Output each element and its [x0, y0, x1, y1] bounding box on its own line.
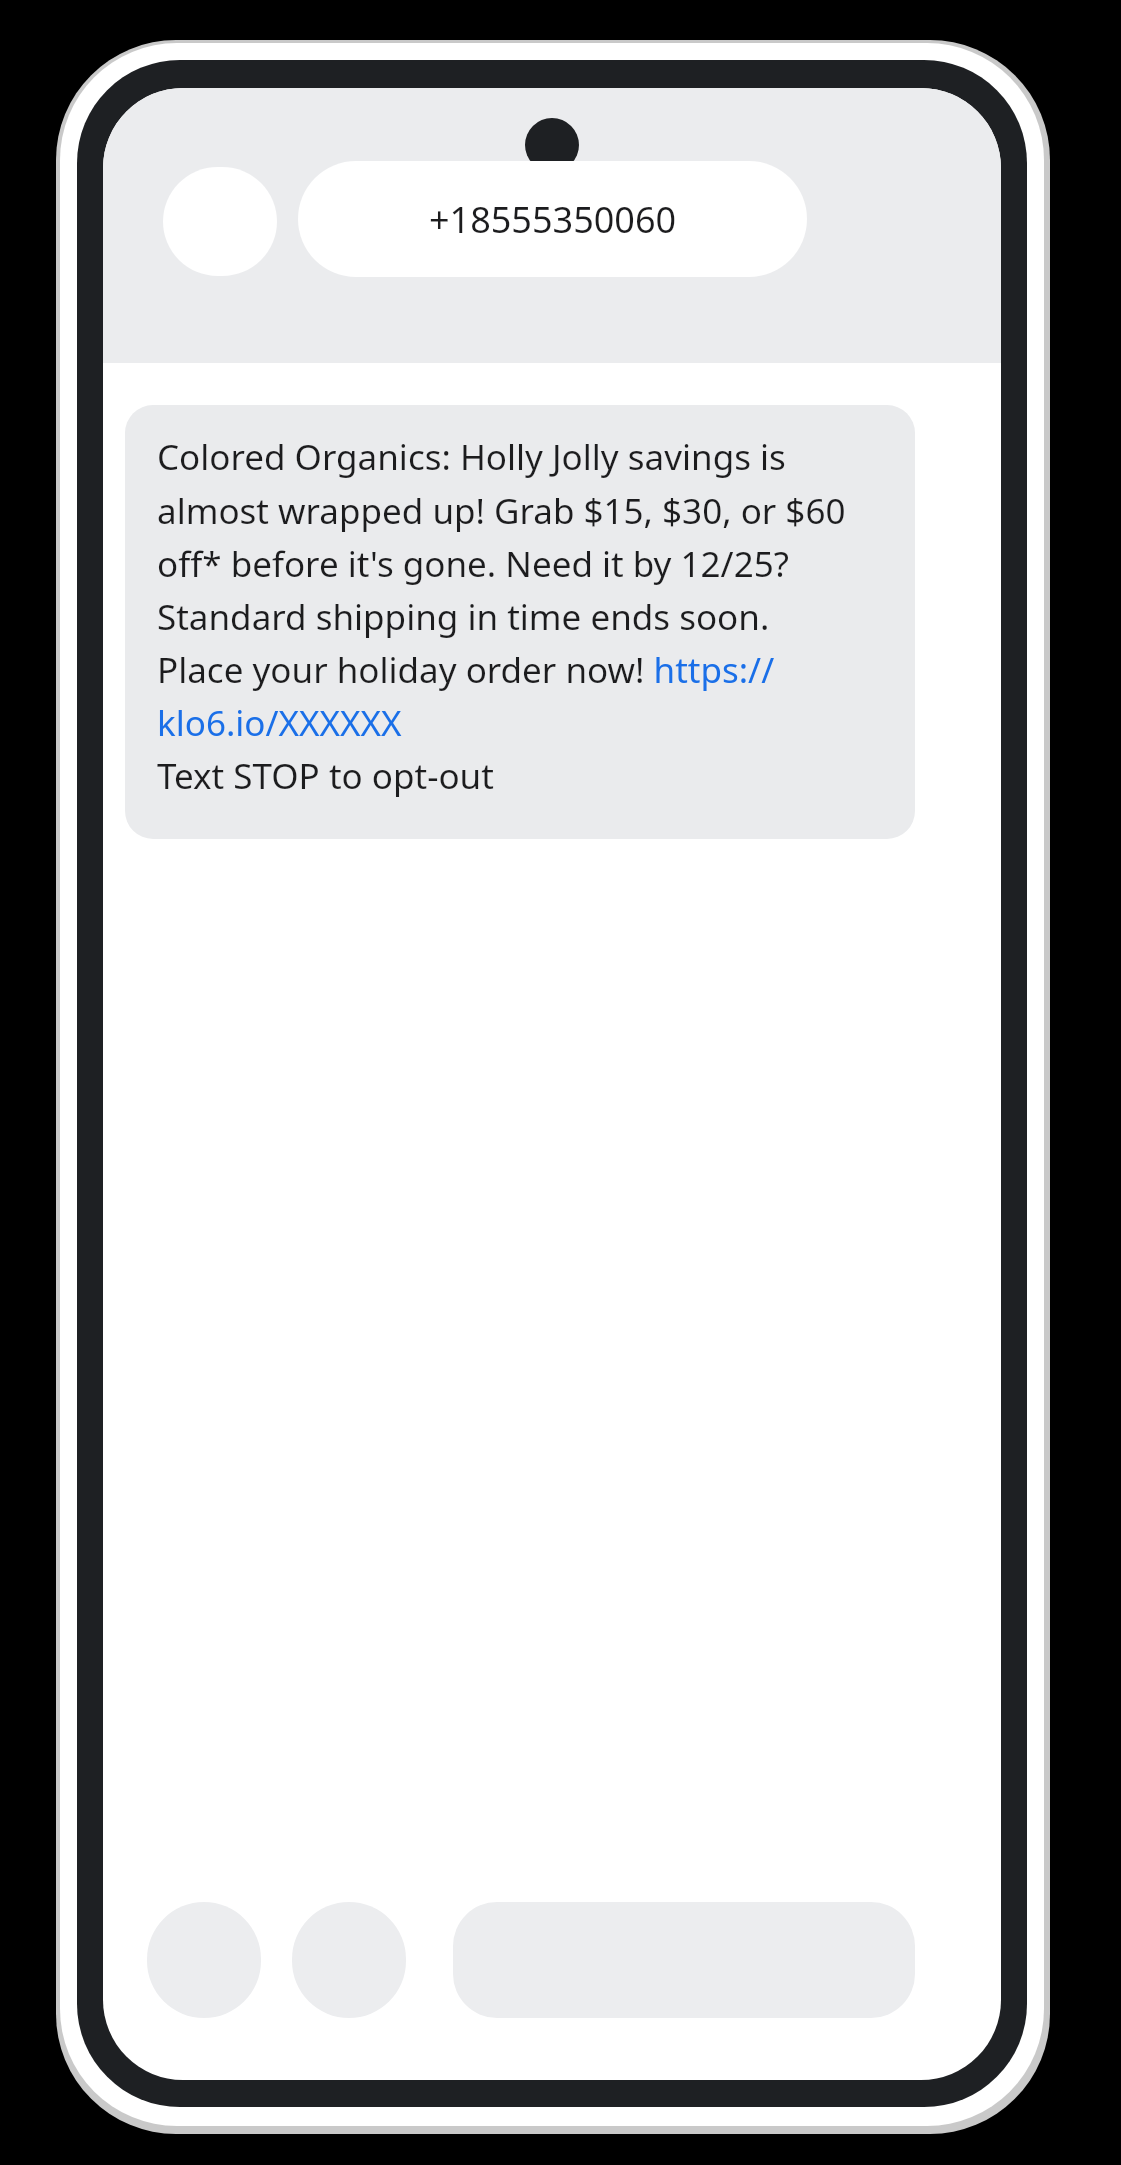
button[interactable]: +18555350060	[298, 161, 807, 277]
staticText: Colored Organics: Holly Jolly savings is…	[157, 433, 857, 799]
button[interactable]: Text message input	[453, 1902, 915, 2018]
button[interactable]: Camera	[292, 1902, 406, 2018]
staticText: +18555350060	[429, 195, 677, 244]
button[interactable]: Colored Organics: Holly Jolly savings is…	[125, 405, 915, 839]
button[interactable]: Attach	[147, 1902, 261, 2018]
button[interactable]: Back	[163, 167, 277, 276]
